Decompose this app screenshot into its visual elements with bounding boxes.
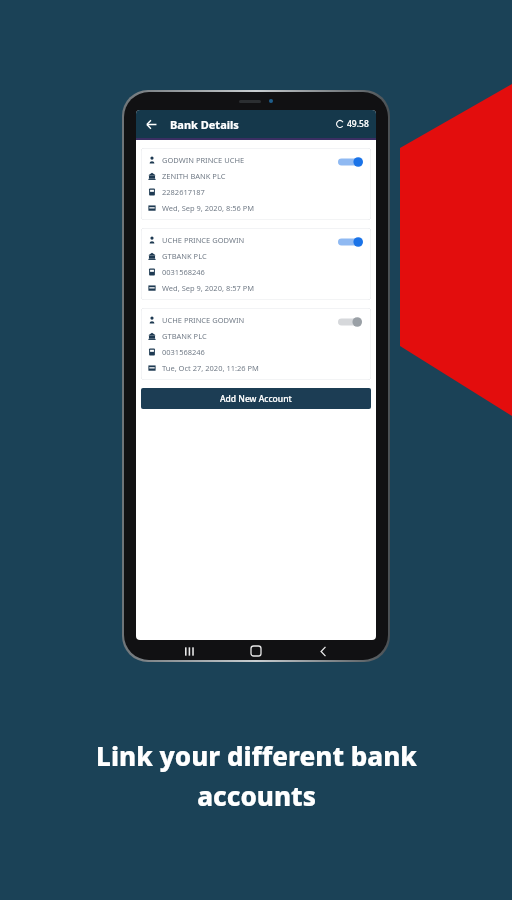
staticText: UCHE PRINCE GODWIN <box>162 235 245 245</box>
button[interactable]: Enable account <box>338 316 364 328</box>
staticText: 0031568246 <box>162 267 205 277</box>
button[interactable]: Back <box>141 114 161 134</box>
other: Refresh <box>336 120 344 128</box>
staticText: accounts <box>197 778 316 813</box>
button[interactable]: Refresh <box>336 118 369 130</box>
staticText: 0031568246 <box>162 347 205 357</box>
button[interactable]: Back <box>310 640 336 662</box>
staticText: GTBANK PLC <box>162 251 207 261</box>
staticText: ZENITH BANK PLC <box>162 171 226 181</box>
button[interactable]: Home <box>243 640 269 662</box>
staticText: 2282617187 <box>162 187 205 197</box>
button[interactable]: GODWIN PRINCE UCHE <box>141 148 371 220</box>
staticText: GODWIN PRINCE UCHE <box>162 155 245 165</box>
staticText: Tue, Oct 27, 2020, 11:26 PM <box>162 363 259 373</box>
staticText: Wed, Sep 9, 2020, 8:57 PM <box>162 283 255 293</box>
button[interactable]: Disable account <box>338 236 364 248</box>
button[interactable]: Add New Account <box>141 388 371 409</box>
staticText: Link your different bank <box>96 738 417 773</box>
staticText: Bank Details <box>170 117 239 132</box>
staticText: 49.58 <box>347 118 369 130</box>
button[interactable]: Disable account <box>338 156 364 168</box>
staticText: Wed, Sep 9, 2020, 8:56 PM <box>162 203 255 213</box>
staticText: UCHE PRINCE GODWIN <box>162 315 245 325</box>
staticText: Add New Account <box>220 393 292 405</box>
staticText: GTBANK PLC <box>162 331 207 341</box>
button[interactable]: UCHE PRINCE GODWIN <box>141 228 371 300</box>
button[interactable]: Recents <box>177 640 203 662</box>
button[interactable]: UCHE PRINCE GODWIN <box>141 308 371 380</box>
